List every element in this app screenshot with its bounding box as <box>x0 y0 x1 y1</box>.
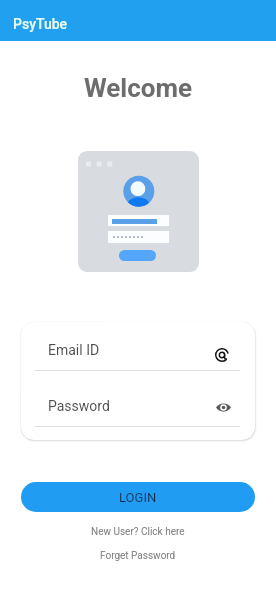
button[interactable]: PsyTube <box>0 0 276 41</box>
staticText: Forget Password <box>100 550 176 562</box>
button[interactable]: New User? Click here <box>85 524 191 540</box>
button[interactable]: Email ID <box>21 322 255 369</box>
staticText: LOGIN <box>119 490 157 505</box>
staticText: PsyTube <box>13 16 68 32</box>
button[interactable]: Email <box>206 336 232 362</box>
staticText: Email ID <box>48 342 100 358</box>
button[interactable]: Forget Password <box>94 548 182 564</box>
staticText: New User? Click here <box>91 526 185 538</box>
button[interactable]: Show password <box>206 392 232 418</box>
button[interactable]: LOGIN <box>21 482 255 512</box>
button[interactable]: Password <box>21 378 255 425</box>
staticText: Welcome <box>0 73 276 103</box>
staticText: Password <box>48 398 110 414</box>
